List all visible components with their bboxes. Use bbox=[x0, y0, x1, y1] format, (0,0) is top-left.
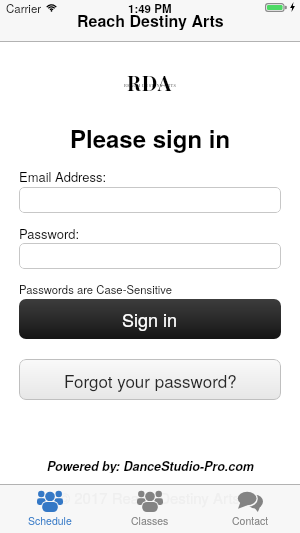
button[interactable]: Contact bbox=[200, 484, 300, 533]
button[interactable]: Forgot your password? bbox=[19, 359, 281, 400]
staticText: Please sign in bbox=[70, 121, 231, 153]
staticText: Carrier bbox=[6, 0, 42, 16]
button[interactable]: Text field bbox=[19, 187, 281, 213]
staticText: Passwords are Case-Sensitive bbox=[19, 281, 173, 297]
staticText: Classes bbox=[131, 513, 169, 528]
staticText: REACH DESTINY ARTS bbox=[124, 82, 177, 88]
button[interactable]: Text field bbox=[19, 243, 281, 269]
staticText: © 2017 Reach Destiny Arts bbox=[59, 487, 241, 508]
staticText: Password: bbox=[19, 224, 80, 243]
staticText: Reach Destiny Arts bbox=[77, 9, 224, 30]
button[interactable]: Schedule bbox=[0, 484, 100, 533]
button[interactable]: Classes bbox=[100, 484, 200, 533]
staticText: Contact bbox=[232, 513, 269, 528]
staticText: Powered by: DanceStudio-Pro.com bbox=[47, 457, 254, 473]
staticText: 1:49 PM bbox=[128, 0, 172, 16]
staticText: Sign in bbox=[122, 306, 178, 332]
staticText: Schedule bbox=[28, 513, 72, 528]
staticText: RDA bbox=[127, 69, 173, 91]
staticText: Forgot your password? bbox=[64, 368, 237, 392]
staticText: Email Address: bbox=[19, 167, 107, 186]
button[interactable]: Sign in bbox=[19, 299, 281, 339]
